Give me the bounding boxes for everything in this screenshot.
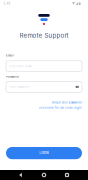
button[interactable]: Home xyxy=(35,170,53,180)
staticText: 5:48 xyxy=(4,2,11,5)
staticText: LOGIN xyxy=(39,151,48,155)
button[interactable]: Click here for QR code login xyxy=(6,106,82,109)
staticText: Email xyxy=(6,54,14,57)
staticText: Click here for QR code login xyxy=(39,106,82,109)
staticText: Remote Support xyxy=(19,32,68,39)
button[interactable]: Forgot your password? xyxy=(6,101,82,104)
button[interactable]: LOGIN xyxy=(6,147,82,159)
button[interactable]: Back xyxy=(11,170,29,180)
staticText: Enter your email xyxy=(9,65,32,68)
staticText: Your password xyxy=(9,85,29,88)
staticText: Password xyxy=(6,75,19,78)
staticText: Forgot your password? xyxy=(52,101,82,104)
button[interactable]: Recents xyxy=(58,170,76,180)
